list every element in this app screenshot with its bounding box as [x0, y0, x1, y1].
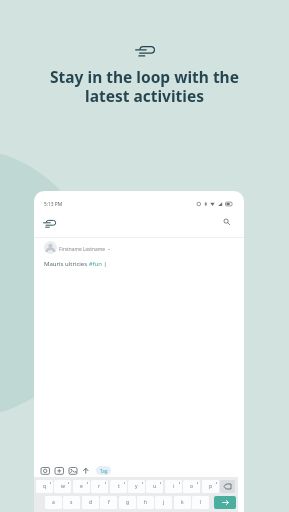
button[interactable]: h — [137, 496, 154, 509]
staticText: k — [181, 499, 184, 506]
staticText: a — [52, 499, 55, 506]
staticText: f — [108, 499, 110, 506]
button[interactable]: i — [165, 480, 182, 493]
staticText: g — [126, 499, 130, 506]
button[interactable]: q — [36, 480, 53, 493]
staticText: d — [89, 499, 93, 506]
button[interactable]: d — [82, 496, 99, 509]
button[interactable]: p — [202, 480, 219, 493]
button[interactable]: s — [63, 496, 80, 509]
staticText: y — [135, 483, 138, 490]
staticText: w — [61, 483, 65, 490]
staticText: Firstname Lastname — [59, 246, 105, 253]
button[interactable]: y — [128, 480, 145, 493]
button[interactable]: t — [110, 480, 127, 493]
staticText: j — [163, 499, 165, 506]
staticText: q — [43, 483, 47, 490]
button[interactable]: w — [54, 480, 71, 493]
staticText: i — [173, 483, 175, 490]
button[interactable]: f — [100, 496, 117, 509]
button[interactable] — [214, 496, 236, 509]
button[interactable]: Tag — [96, 466, 111, 475]
button[interactable] — [220, 480, 235, 493]
staticText: r — [98, 483, 101, 490]
button[interactable]: r — [91, 480, 108, 493]
staticText: s — [70, 499, 73, 506]
staticText: t — [118, 483, 120, 490]
staticText: u — [153, 483, 157, 490]
staticText: Stay in the loop with the latest activit… — [0, 66, 289, 107]
button[interactable]: l — [192, 496, 209, 509]
button[interactable] — [223, 218, 231, 226]
button[interactable]: k — [174, 496, 191, 509]
staticText: Mauris ultricies #fun | — [44, 260, 107, 268]
button[interactable]: o — [183, 480, 200, 493]
staticText: Tag — [100, 468, 108, 474]
button[interactable]: u — [146, 480, 163, 493]
staticText: o — [190, 483, 194, 490]
button[interactable]: j — [155, 496, 172, 509]
staticText: h — [144, 499, 148, 506]
staticText: p — [209, 483, 213, 490]
staticText: 5:13 PM — [44, 201, 63, 208]
button[interactable]: e — [73, 480, 90, 493]
staticText: l — [200, 499, 202, 506]
button[interactable]: g — [119, 496, 136, 509]
staticText: e — [80, 483, 83, 490]
button[interactable]: a — [45, 496, 62, 509]
